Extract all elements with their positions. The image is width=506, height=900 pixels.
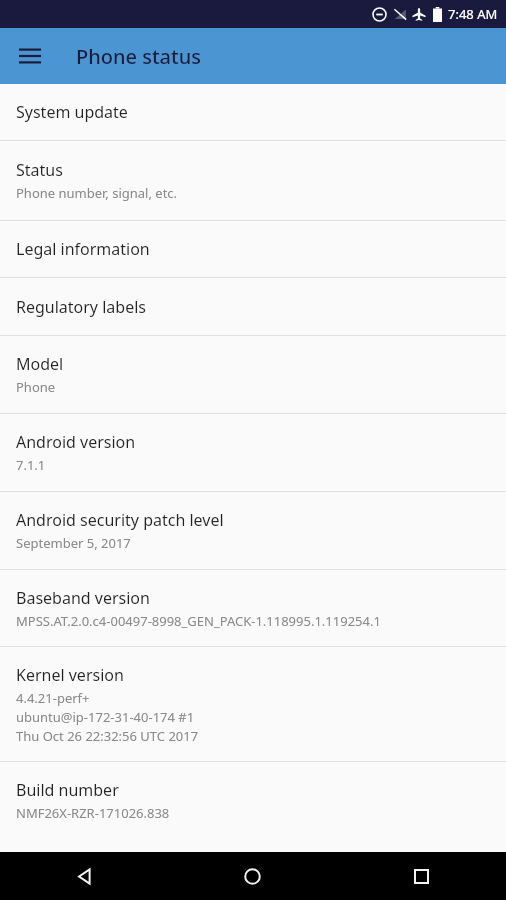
staticText: ubuntu@ip-172-31-40-174 #1 — [16, 708, 195, 726]
staticText: Phone number, signal, etc. — [16, 184, 178, 202]
button[interactable]: System update — [0, 84, 506, 140]
staticText: Phone — [16, 378, 56, 396]
staticText: NMF26X-RZR-171026.838 — [16, 804, 170, 822]
button[interactable]: Recent apps — [337, 852, 506, 900]
button[interactable]: Home — [168, 852, 337, 900]
button[interactable]: Android version — [0, 414, 506, 491]
staticText: Regulatory labels — [16, 296, 146, 318]
button[interactable]: Status — [0, 141, 506, 220]
staticText: 7:48 AM — [448, 5, 498, 23]
staticText: Thu Oct 26 22:32:56 UTC 2017 — [16, 727, 199, 745]
staticText: System update — [16, 101, 128, 123]
button[interactable]: Model — [0, 336, 506, 413]
button[interactable]: Build number — [0, 762, 506, 838]
staticText: Model — [16, 353, 64, 375]
staticText: Android security patch level — [16, 509, 224, 531]
staticText: MPSS.AT.2.0.c4-00497-8998_GEN_PACK-1.118… — [16, 612, 381, 630]
button[interactable]: Back — [0, 852, 168, 900]
button[interactable]: Open navigation menu — [10, 36, 50, 76]
staticText: 7.1.1 — [16, 456, 46, 474]
staticText: September 5, 2017 — [16, 534, 131, 552]
button[interactable]: Baseband version — [0, 570, 506, 646]
button[interactable]: Legal information — [0, 221, 506, 277]
button[interactable]: Kernel version — [0, 647, 506, 761]
staticText: 4.4.21-perf+ — [16, 689, 90, 707]
staticText: Status — [16, 159, 63, 181]
staticText: Kernel version — [16, 664, 124, 686]
staticText: Android version — [16, 431, 136, 453]
button[interactable]: Regulatory labels — [0, 278, 506, 335]
staticText: Legal information — [16, 238, 150, 260]
staticText: Baseband version — [16, 587, 150, 609]
staticText: Phone status — [76, 43, 201, 70]
staticText: Build number — [16, 779, 119, 801]
button[interactable]: Android security patch level — [0, 492, 506, 569]
